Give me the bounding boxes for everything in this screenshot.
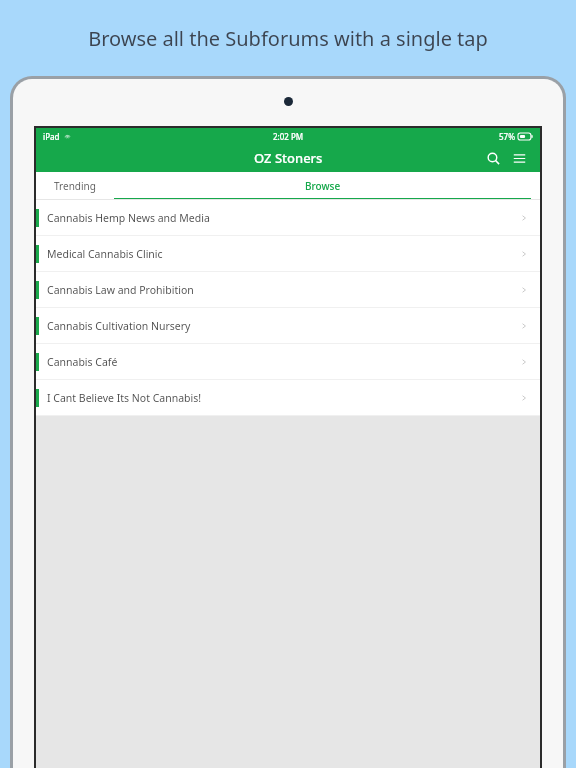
button[interactable]: Cannabis Hemp News and Media (36, 200, 540, 236)
button[interactable]: Search (482, 147, 504, 169)
staticText: Cannabis Cultivation Nursery (47, 319, 191, 333)
staticText: 57% (499, 131, 515, 142)
staticText: Trending (54, 179, 96, 193)
staticText: Cannabis Café (47, 355, 118, 369)
button[interactable]: Cannabis Cultivation Nursery (36, 308, 540, 344)
staticText: Browse (305, 179, 341, 193)
staticText: Medical Cannabis Clinic (47, 247, 163, 261)
staticText: Browse all the Subforums with a single t… (88, 25, 488, 52)
button[interactable]: Cannabis Law and Prohibition (36, 272, 540, 308)
staticText: Cannabis Hemp News and Media (47, 211, 210, 225)
button[interactable]: Menu (508, 147, 530, 169)
button[interactable]: Cannabis Café (36, 344, 540, 380)
button[interactable]: I Cant Believe Its Not Cannabis! (36, 380, 540, 416)
staticText: iPad (43, 131, 60, 142)
staticText: 2:02 PM (273, 131, 304, 142)
button[interactable]: Medical Cannabis Clinic (36, 236, 540, 272)
staticText: Cannabis Law and Prohibition (47, 283, 194, 297)
button[interactable]: Browse (105, 172, 540, 200)
staticText: I Cant Believe Its Not Cannabis! (47, 391, 202, 405)
staticText: OZ Stoners (254, 149, 323, 167)
button[interactable]: Trending (45, 172, 105, 200)
